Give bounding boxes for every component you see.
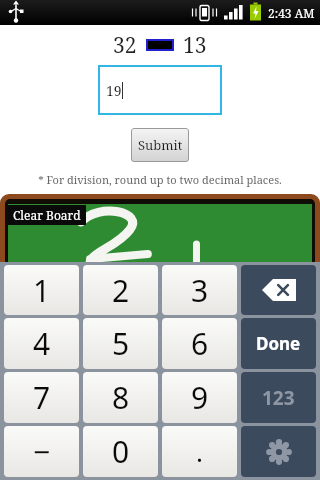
staticText: 7 [33, 377, 51, 418]
button[interactable]: 2 [83, 265, 158, 315]
button[interactable]: 19 [98, 65, 222, 115]
staticText: 19 [106, 81, 122, 100]
staticText: 2 [112, 270, 130, 311]
button[interactable]: 6 [162, 318, 237, 369]
button[interactable]: 0 [83, 426, 158, 477]
staticText: Submit [138, 136, 183, 154]
button[interactable]: Backspace [241, 265, 316, 315]
button[interactable]: Done [241, 318, 316, 369]
button[interactable]: − [4, 426, 79, 477]
button[interactable]: 8 [83, 372, 158, 423]
button[interactable]: 5 [83, 318, 158, 369]
staticText: − [33, 431, 51, 472]
button[interactable]: 4 [4, 318, 79, 369]
staticText: 32 [113, 31, 137, 59]
button[interactable]: Submit [131, 128, 189, 162]
staticText: 5 [112, 323, 130, 364]
staticText: 1 [33, 270, 51, 311]
button[interactable]: Clear Board [8, 205, 86, 225]
staticText: 6 [191, 323, 209, 364]
staticText: 4 [33, 323, 51, 364]
button[interactable]: 3 [162, 265, 237, 315]
staticText: 123 [262, 385, 295, 411]
staticText: . [196, 434, 203, 469]
staticText: 13 [183, 31, 207, 59]
staticText: 0 [112, 431, 130, 472]
button[interactable]: Settings [241, 426, 316, 477]
staticText: Done [256, 332, 301, 355]
staticText: 9 [191, 377, 209, 418]
button[interactable]: Numbers [241, 372, 316, 423]
staticText: 3 [191, 270, 209, 311]
staticText: Clear Board [13, 207, 81, 223]
button[interactable]: . [162, 426, 237, 477]
button[interactable]: 9 [162, 372, 237, 423]
staticText: 2:43 AM [268, 5, 315, 21]
button[interactable]: 1 [4, 265, 79, 315]
staticText: * For division, round up to two decimal … [0, 172, 320, 187]
staticText: 8 [112, 377, 130, 418]
button[interactable]: 7 [4, 372, 79, 423]
